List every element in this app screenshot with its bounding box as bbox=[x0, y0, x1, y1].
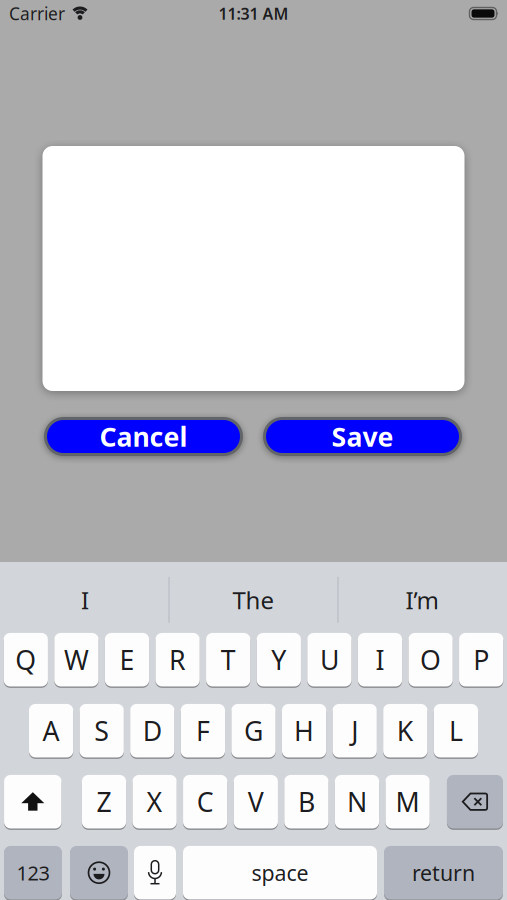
button[interactable]: F bbox=[181, 703, 225, 758]
staticText: J bbox=[351, 713, 358, 748]
staticText: V bbox=[248, 784, 264, 819]
staticText: space bbox=[251, 858, 308, 887]
staticText: Z bbox=[96, 784, 111, 819]
button[interactable]: O bbox=[408, 632, 453, 687]
button[interactable]: J bbox=[332, 703, 377, 758]
staticText: G bbox=[244, 713, 263, 748]
button[interactable]: G bbox=[231, 703, 276, 758]
button[interactable]: S bbox=[79, 703, 124, 758]
button[interactable]: R bbox=[155, 632, 200, 687]
staticText: U bbox=[320, 642, 339, 677]
staticText: L bbox=[449, 713, 463, 748]
button[interactable]: H bbox=[282, 703, 326, 758]
staticText: S bbox=[94, 713, 109, 748]
button[interactable]: P bbox=[459, 632, 503, 687]
button[interactable]: Delete bbox=[447, 774, 503, 829]
button[interactable]: N bbox=[335, 774, 379, 829]
button[interactable]: E bbox=[105, 632, 149, 687]
button[interactable]: D bbox=[130, 703, 174, 758]
staticText: F bbox=[196, 713, 210, 748]
staticText: O bbox=[420, 642, 441, 677]
staticText: N bbox=[347, 784, 367, 819]
staticText: return bbox=[412, 858, 475, 887]
button[interactable]: B bbox=[284, 774, 328, 829]
button[interactable]: V bbox=[234, 774, 278, 829]
button[interactable]: Numbers bbox=[4, 845, 62, 900]
staticText: I bbox=[81, 584, 89, 616]
staticText: I’m bbox=[405, 584, 438, 616]
staticText: D bbox=[143, 713, 162, 748]
staticText: 11:31 AM bbox=[218, 3, 288, 24]
staticText: T bbox=[221, 642, 236, 677]
button[interactable]: I bbox=[358, 632, 402, 687]
button[interactable]: W bbox=[54, 632, 98, 687]
button[interactable]: I bbox=[1, 568, 169, 632]
button[interactable]: I’m bbox=[338, 568, 506, 632]
staticText: 123 bbox=[16, 859, 49, 886]
button[interactable]: Q bbox=[4, 632, 48, 687]
button[interactable]: Shift bbox=[4, 774, 61, 829]
button[interactable]: The bbox=[169, 568, 338, 632]
staticText: The bbox=[232, 584, 274, 616]
staticText: C bbox=[197, 784, 214, 819]
button[interactable]: K bbox=[383, 703, 427, 758]
staticText: I bbox=[375, 642, 384, 677]
staticText: P bbox=[473, 642, 489, 677]
button[interactable]: X bbox=[132, 774, 177, 829]
staticText: X bbox=[147, 784, 163, 819]
button[interactable]: U bbox=[307, 632, 351, 687]
staticText: E bbox=[119, 642, 134, 677]
staticText: Carrier bbox=[9, 2, 65, 25]
button[interactable]: Emoji bbox=[70, 845, 128, 900]
staticText: A bbox=[43, 713, 60, 748]
staticText: B bbox=[298, 784, 315, 819]
staticText: Save bbox=[331, 419, 393, 454]
staticText: Cancel bbox=[99, 419, 187, 454]
button[interactable]: Cancel bbox=[44, 417, 243, 456]
staticText: Y bbox=[271, 642, 286, 677]
button[interactable]: Y bbox=[257, 632, 301, 687]
staticText: M bbox=[396, 784, 420, 819]
button[interactable]: return bbox=[384, 845, 503, 900]
button[interactable]: space bbox=[183, 845, 377, 900]
staticText: H bbox=[294, 713, 314, 748]
button[interactable]: A bbox=[29, 703, 73, 758]
staticText: W bbox=[64, 642, 89, 677]
staticText: K bbox=[397, 713, 414, 748]
staticText: R bbox=[169, 642, 186, 677]
button[interactable]: Z bbox=[82, 774, 126, 829]
staticText: Q bbox=[15, 642, 36, 677]
button[interactable]: Save bbox=[263, 417, 462, 456]
button[interactable]: M bbox=[385, 774, 430, 829]
button[interactable]: C bbox=[183, 774, 227, 829]
button[interactable]: L bbox=[434, 703, 478, 758]
button[interactable]: T bbox=[206, 632, 250, 687]
button[interactable]: Dictate bbox=[134, 845, 176, 900]
